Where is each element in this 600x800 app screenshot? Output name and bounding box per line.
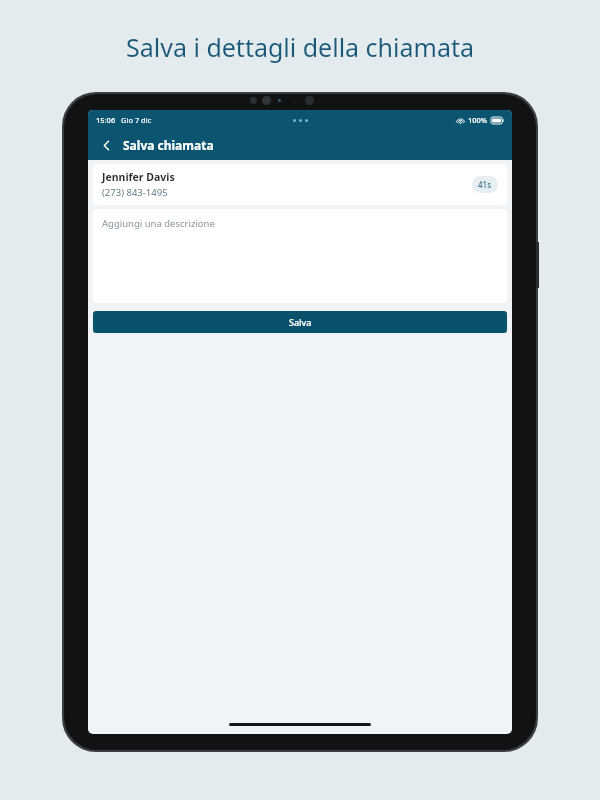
staticText: Salva chiamata bbox=[123, 137, 214, 153]
button[interactable]: Indietro bbox=[96, 135, 116, 155]
staticText: Salva bbox=[289, 316, 312, 328]
staticText: Gio 7 dic bbox=[121, 115, 152, 125]
staticText: 100% bbox=[468, 115, 488, 125]
button[interactable]: Jennifer Davis bbox=[93, 164, 507, 205]
staticText: 41s bbox=[478, 179, 492, 190]
staticText: Jennifer Davis bbox=[102, 170, 175, 184]
staticText: (273) 843-1495 bbox=[102, 186, 168, 199]
staticText: Salva i dettagli della chiamata bbox=[0, 30, 600, 64]
button[interactable]: Salva bbox=[93, 311, 507, 333]
staticText: 15:06 bbox=[96, 115, 116, 125]
button[interactable]: Aggiungi una descrizione bbox=[93, 209, 507, 303]
staticText: Aggiungi una descrizione bbox=[102, 217, 215, 230]
